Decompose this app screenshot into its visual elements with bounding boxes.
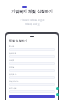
- button[interactable]: Logo: [22, 6, 27, 8]
- staticText: 이메일: [9, 66, 15, 68]
- staticText: 연락처: [9, 59, 15, 61]
- staticText: 기업복지 혜택을 무료로 체험해 보세요: [20, 19, 45, 26]
- staticText: 회사명: [9, 45, 15, 47]
- button[interactable]: [9, 90, 55, 93]
- button[interactable]: [9, 95, 55, 98]
- button[interactable]: [9, 83, 55, 86]
- staticText: 관심 서비스: [9, 80, 19, 82]
- button[interactable]: [9, 48, 55, 51]
- button[interactable]: Chat: [56, 87, 59, 90]
- button[interactable]: [9, 69, 55, 72]
- staticText: 기업복지 체험 신청하기: [11, 9, 53, 14]
- button[interactable]: [9, 55, 55, 58]
- button[interactable]: [9, 62, 55, 65]
- staticText: 담당자명: [9, 52, 17, 54]
- staticText: 문의 내용: [9, 87, 17, 89]
- button[interactable]: [9, 76, 55, 79]
- staticText: 체험 신청하기: [9, 39, 28, 43]
- staticText: 임직원 수: [9, 73, 17, 75]
- button[interactable]: Scroll to top: [56, 93, 59, 96]
